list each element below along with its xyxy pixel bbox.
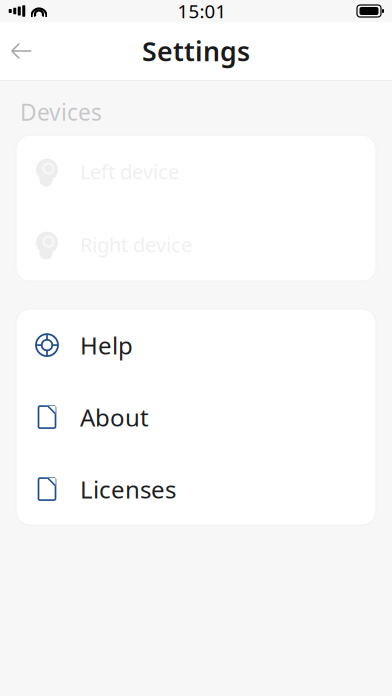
staticText: Licenses — [80, 473, 176, 505]
staticText: Help — [80, 329, 133, 361]
staticText: 15:01 — [177, 0, 226, 23]
button[interactable]: Licenses — [16, 453, 376, 525]
staticText: Devices — [20, 97, 102, 127]
button[interactable]: About — [16, 381, 376, 453]
staticText: Right device — [80, 231, 192, 258]
button[interactable]: Help — [16, 309, 376, 381]
button[interactable]: Back — [0, 29, 44, 73]
staticText: About — [80, 401, 149, 433]
staticText: Left device — [80, 158, 179, 185]
staticText: Settings — [142, 33, 250, 69]
